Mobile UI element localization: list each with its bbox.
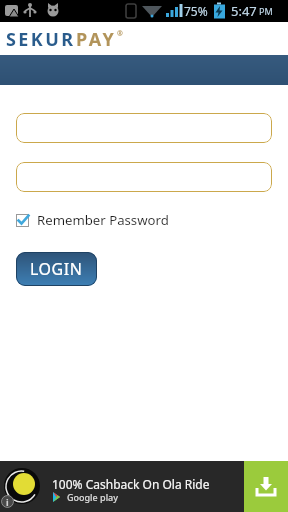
button[interactable] [16, 113, 272, 143]
staticText: Remember Password [37, 211, 169, 229]
staticText: 5:47 [231, 2, 257, 20]
button[interactable] [16, 162, 272, 192]
button[interactable]: i [0, 461, 288, 512]
staticText: PAY [76, 27, 117, 52]
staticText: ® [117, 29, 123, 39]
staticText: SEKUR [6, 27, 76, 52]
staticText: Google play [67, 491, 118, 503]
staticText: PM [259, 5, 273, 17]
button[interactable]: LOGIN [16, 252, 97, 286]
button[interactable]: Remember Password [16, 211, 169, 229]
staticText: 75% [184, 3, 208, 19]
button[interactable] [244, 461, 288, 512]
staticText: 100% Cashback On Ola Ride [52, 476, 210, 492]
staticText: i [6, 496, 9, 508]
staticText: LOGIN [30, 258, 83, 280]
